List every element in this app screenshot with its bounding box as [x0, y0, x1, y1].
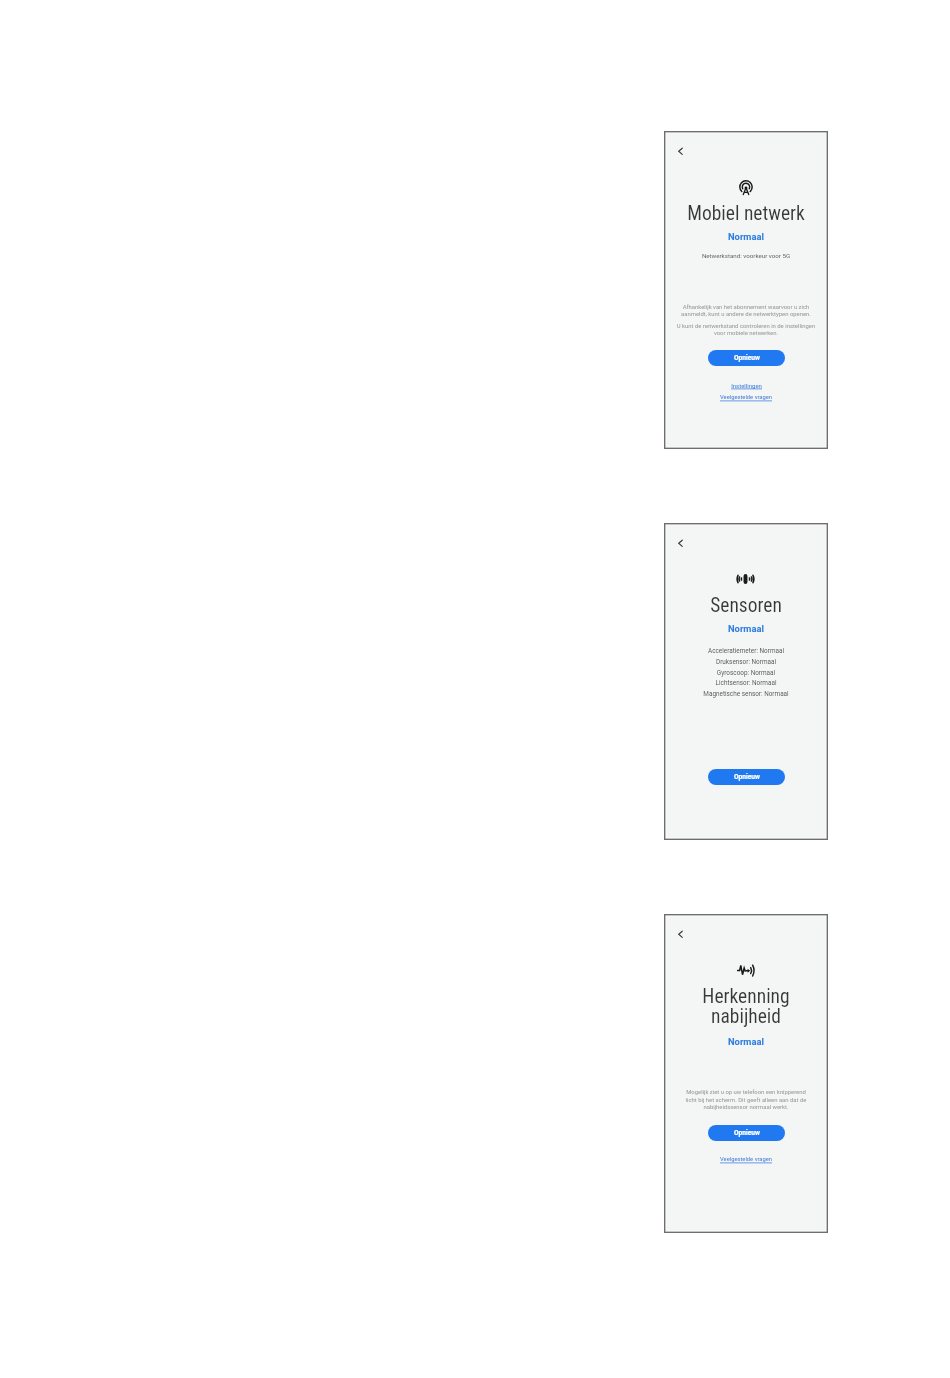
button[interactable]: Back	[673, 144, 687, 158]
staticText: Instellingen	[731, 382, 762, 389]
staticText: Opnieuw	[734, 773, 760, 781]
staticText: Netwerkstand: voorkeur voor 5G	[665, 252, 827, 259]
button[interactable]: Veelgestelde vragen	[720, 1156, 772, 1164]
staticText: Sensoren	[665, 594, 827, 617]
staticText: Druksensor: Normaal	[665, 658, 827, 666]
button[interactable]: Opnieuw	[708, 350, 785, 366]
staticText: Veelgestelde vragen	[720, 394, 772, 401]
button[interactable]: Back	[673, 536, 687, 550]
staticText: Mogelijk ziet u op uw telefoon een knipp…	[682, 1089, 810, 1110]
button[interactable]: Opnieuw	[708, 769, 785, 785]
staticText: Normaal	[665, 1036, 827, 1047]
staticText: Afhankelijk van het abonnement waarvoor …	[677, 304, 815, 318]
staticText: Acceleratiemeter: Normaal	[665, 647, 827, 655]
button[interactable]: Back	[673, 927, 687, 941]
staticText: Mobiel netwerk	[665, 202, 827, 225]
staticText: Opnieuw	[734, 354, 760, 362]
staticText: U kunt de netwerkstand controleren in de…	[673, 323, 819, 337]
staticText: Herkenning nabijheid	[665, 985, 827, 1028]
button[interactable]: Instellingen	[731, 382, 762, 390]
button[interactable]: Veelgestelde vragen	[720, 394, 772, 402]
staticText: Veelgestelde vragen	[720, 1156, 772, 1163]
staticText: Normaal	[665, 231, 827, 242]
button[interactable]: Opnieuw	[708, 1125, 785, 1141]
staticText: Opnieuw	[734, 1129, 760, 1137]
staticText: Lichtsensor: Normaal	[665, 679, 827, 687]
staticText: Magnetische sensor: Normaal	[665, 690, 827, 698]
staticText: Gyroscoop: Normaal	[665, 669, 827, 677]
staticText: Normaal	[665, 623, 827, 634]
